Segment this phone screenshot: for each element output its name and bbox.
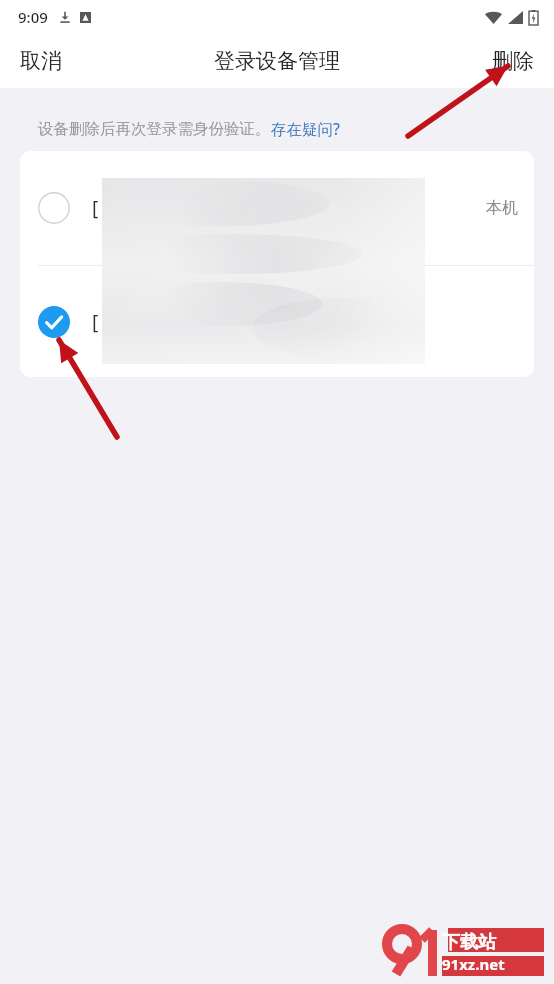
staticText: [ [92,309,99,335]
staticText: 91xz.net [442,954,505,974]
staticText: 设备删除后再次登录需身份验证。 [38,119,271,139]
other: 未选中 [38,192,70,224]
staticText: 取消 [20,48,62,74]
staticText: 删除 [492,48,534,74]
button[interactable]: 已选中 [20,266,534,377]
staticText: 存在疑问? [271,118,340,139]
button[interactable]: 未选中 [20,151,534,265]
staticText: [ [92,195,99,221]
staticText: 9:09 [18,7,48,27]
button[interactable]: 删除 [476,40,554,82]
staticText: 下载站 [442,931,496,954]
button[interactable]: 存在疑问? [271,118,340,139]
button[interactable]: 取消 [0,40,78,82]
other: 已选中 [38,306,70,338]
staticText: 本机 [486,198,518,218]
staticText: 登录设备管理 [214,48,340,74]
